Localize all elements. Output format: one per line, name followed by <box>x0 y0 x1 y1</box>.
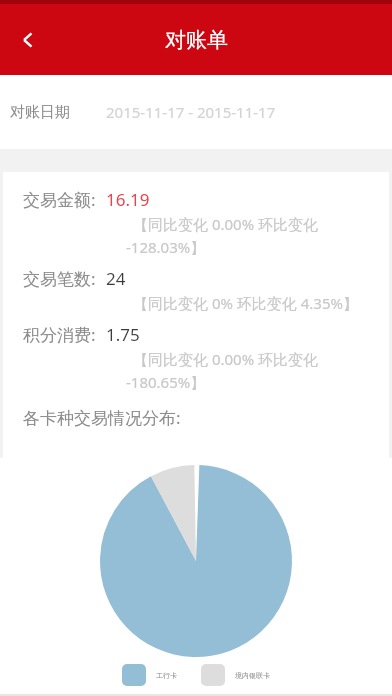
staticText: 各卡种交易情况分布: <box>23 406 181 429</box>
staticText: 交易笔数: <box>23 267 96 290</box>
staticText: -180.65%】 <box>126 372 206 392</box>
staticText: 【同比变化 0.00% 环比变化 <box>133 349 319 369</box>
staticText: 24 <box>106 267 126 290</box>
staticText: 对账单 <box>165 27 228 53</box>
staticText: 交易金额: <box>23 188 96 211</box>
button[interactable]: 对账日期 <box>0 75 392 149</box>
staticText: 对账日期 <box>10 103 70 122</box>
staticText: 2015-11-17 - 2015-11-17 <box>106 102 276 122</box>
staticText: 境内银联卡 <box>235 671 270 680</box>
staticText: 【同比变化 0% 环比变化 4.35%】 <box>133 293 358 313</box>
button[interactable]: Back <box>4 16 52 64</box>
staticText: 1.75 <box>106 323 140 346</box>
staticText: -128.03%】 <box>126 237 206 257</box>
staticText: 积分消费: <box>23 323 96 346</box>
staticText: 工行卡 <box>156 671 177 680</box>
staticText: 【同比变化 0.00% 环比变化 <box>133 214 319 234</box>
staticText: 16.19 <box>106 188 150 211</box>
